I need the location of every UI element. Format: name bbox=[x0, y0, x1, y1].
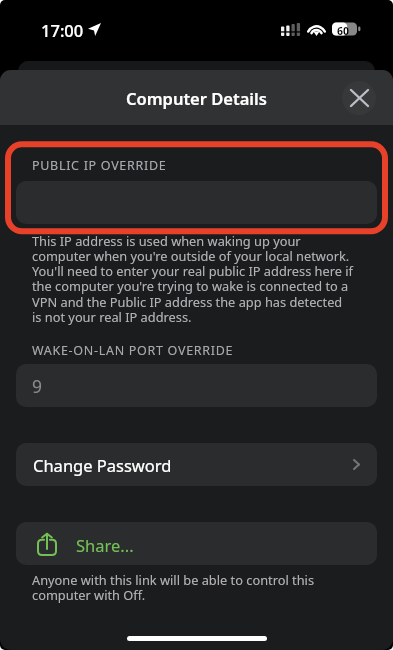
button[interactable]: Change Password bbox=[16, 443, 377, 486]
staticText: computer with Off. bbox=[32, 586, 146, 603]
staticText: the computer you're trying to wake is co… bbox=[32, 277, 349, 294]
staticText: is not your real IP address. bbox=[32, 308, 192, 325]
staticText: 9 bbox=[32, 374, 43, 398]
staticText: 17:00 bbox=[41, 19, 84, 41]
staticText: Share... bbox=[76, 534, 134, 556]
staticText: Computer Details bbox=[126, 87, 267, 109]
staticText: PUBLIC IP OVERRIDE bbox=[32, 157, 167, 174]
staticText: computer when you're outside of your loc… bbox=[32, 247, 350, 264]
staticText: You'll need to enter your real public IP… bbox=[32, 262, 353, 279]
button[interactable]: 9 bbox=[16, 364, 377, 407]
staticText: Anyone with this link will be able to co… bbox=[32, 571, 315, 588]
staticText: VPN and the Public IP address the app ha… bbox=[32, 293, 343, 310]
staticText: 60 bbox=[337, 24, 350, 38]
staticText: This IP address is used when waking up y… bbox=[32, 232, 301, 249]
staticText: Change Password bbox=[33, 454, 172, 476]
button[interactable]: Share... bbox=[16, 522, 377, 565]
staticText: WAKE-ON-LAN PORT OVERRIDE bbox=[32, 342, 234, 359]
button[interactable]: Close bbox=[342, 81, 376, 115]
